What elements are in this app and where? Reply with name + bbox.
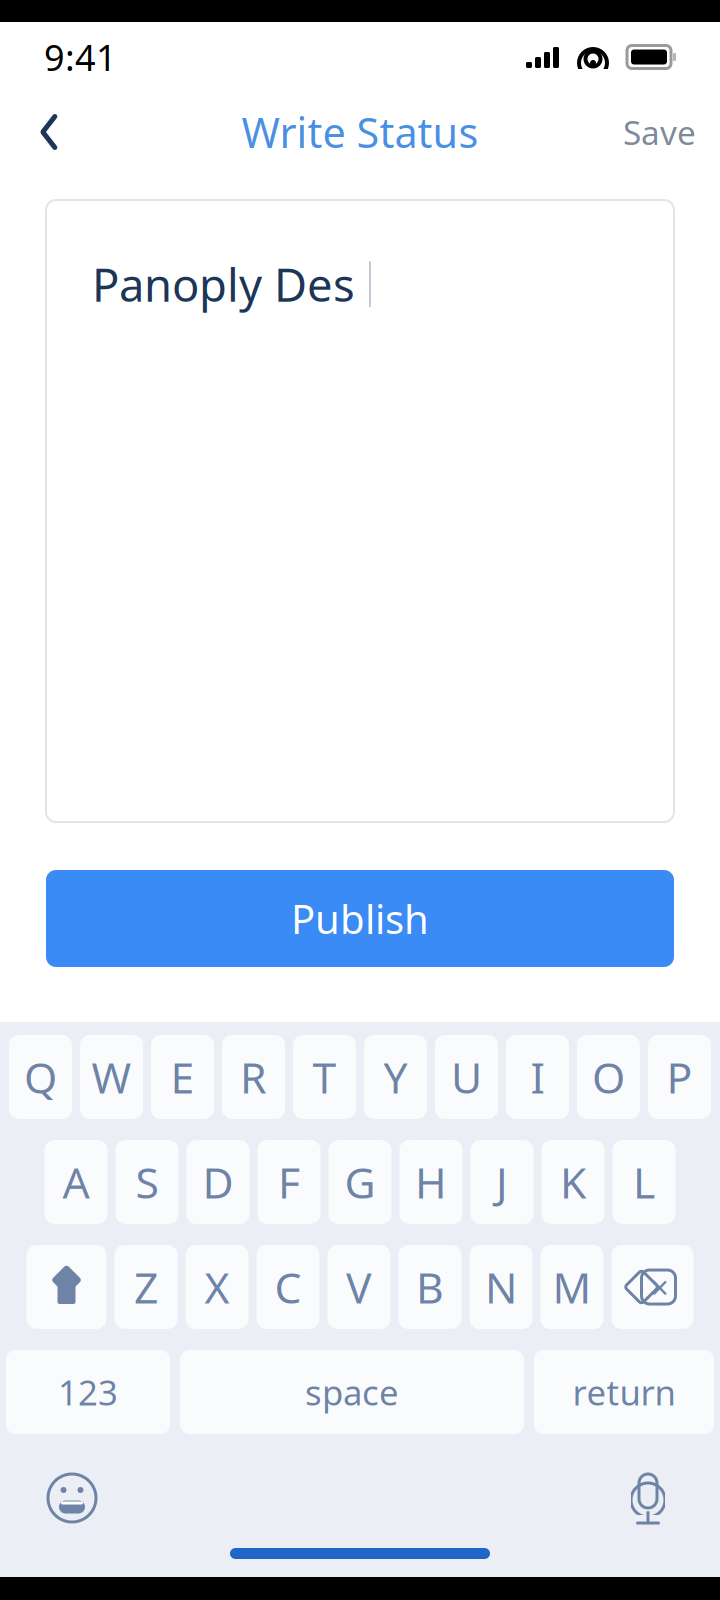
button[interactable]: K [541,1140,604,1224]
staticText: H [415,1154,447,1210]
staticText: E [170,1049,194,1105]
staticText: Publish [291,892,429,945]
staticText: X [204,1259,229,1315]
button[interactable]: X [185,1245,248,1329]
button[interactable]: T [293,1035,356,1119]
staticText: U [451,1049,482,1105]
button[interactable]: B [398,1245,461,1329]
staticText: L [633,1154,655,1210]
button[interactable]: O [577,1035,640,1119]
staticText: J [496,1154,508,1210]
button[interactable]: Save [615,98,704,166]
staticText: Q [24,1049,57,1105]
button[interactable]: N [469,1245,532,1329]
staticText: O [592,1049,625,1105]
button[interactable]: U [435,1035,498,1119]
staticText: F [278,1154,300,1210]
button[interactable]: G [328,1140,391,1224]
button[interactable]: R [222,1035,285,1119]
button[interactable]: I [506,1035,569,1119]
staticText: T [312,1049,336,1105]
button[interactable]: Shift [26,1245,106,1329]
staticText: Y [383,1049,407,1105]
button[interactable]: Back [16,99,82,165]
button[interactable]: C [256,1245,319,1329]
button[interactable]: Dictation [612,1462,684,1534]
staticText: return [572,1369,675,1415]
button[interactable]: Delete [611,1245,693,1329]
staticText: V [346,1259,372,1315]
staticText: A [62,1154,89,1210]
staticText: P [666,1049,692,1105]
button[interactable]: Emoji [36,1462,108,1534]
button[interactable]: P [648,1035,711,1119]
button[interactable]: W [80,1035,143,1119]
button[interactable]: V [327,1245,390,1329]
staticText: space [305,1369,399,1415]
staticText: × [650,1266,668,1308]
button[interactable]: Publish [46,870,674,967]
button[interactable]: Z [114,1245,177,1329]
button[interactable]: F [257,1140,320,1224]
button[interactable]: L [612,1140,675,1224]
button[interactable]: Y [364,1035,427,1119]
staticText: Panoply Des [92,254,355,314]
staticText: Z [134,1259,158,1315]
staticText: D [202,1154,233,1210]
staticText: I [530,1049,544,1105]
button[interactable]: return [534,1350,714,1434]
staticText: K [560,1154,586,1210]
button[interactable]: 123 [6,1350,170,1434]
staticText: N [485,1259,517,1315]
staticText: Save [623,110,696,154]
staticText: Write Status [241,105,478,159]
button[interactable]: D [186,1140,249,1224]
button[interactable]: S [115,1140,178,1224]
staticText: R [240,1049,267,1105]
button[interactable]: H [399,1140,462,1224]
staticText: M [552,1259,591,1315]
button[interactable]: space [180,1350,524,1434]
staticText: G [344,1154,375,1210]
button[interactable]: A [44,1140,107,1224]
staticText: 123 [58,1369,118,1415]
button[interactable]: E [151,1035,214,1119]
staticText: W [91,1049,131,1105]
button[interactable]: J [470,1140,533,1224]
staticText: S [135,1154,158,1210]
staticText: B [416,1259,444,1315]
staticText: C [274,1259,301,1315]
staticText: 9:41 [44,33,117,81]
button[interactable]: M [540,1245,603,1329]
button[interactable]: Q [9,1035,72,1119]
